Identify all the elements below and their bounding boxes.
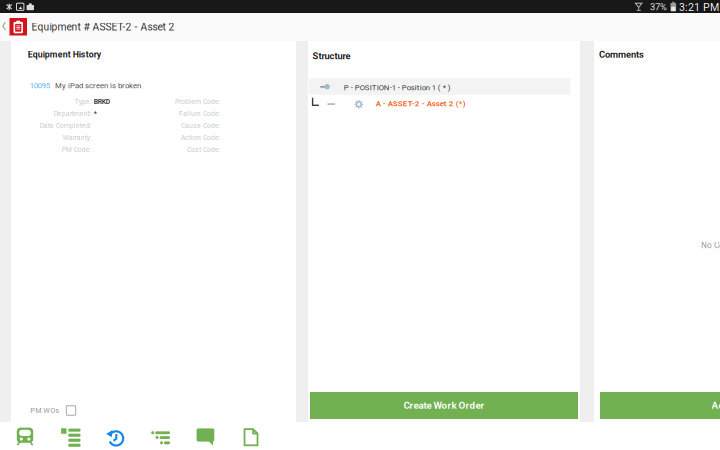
staticText: Warranty: (63, 134, 92, 142)
staticText: Cause Code: (181, 122, 221, 130)
staticText: 3:21 PM (679, 1, 719, 14)
button[interactable]: History (106, 429, 124, 447)
staticText: A - ASSET-2 - Asset 2 (*) (376, 99, 466, 108)
staticText: Add Comment (711, 400, 720, 411)
staticText: Equipment # ASSET-2 - Asset 2 (31, 21, 174, 33)
staticText: 10095 (30, 81, 50, 90)
staticText: Cost Code: (187, 146, 221, 154)
staticText: Department: (54, 110, 92, 118)
button[interactable]: A - ASSET-2 - Asset 2 (*) (309, 96, 571, 110)
button[interactable]: Add Comment (600, 392, 720, 419)
staticText: 37% (650, 2, 667, 12)
button[interactable]: PM WOs (30, 405, 88, 415)
staticText: Date Completed: (40, 122, 92, 130)
button[interactable]: Work Orders (61, 428, 80, 447)
staticText: Equipment History (28, 49, 101, 60)
staticText: P - POSITION-1 - Position 1 ( * ) (344, 83, 451, 92)
button[interactable]: Comments (197, 428, 214, 446)
staticText: * (94, 110, 97, 118)
staticText: Problem Code: (175, 98, 221, 106)
staticText: Structure (313, 50, 351, 61)
staticText: My iPad screen is broken (55, 81, 141, 90)
button[interactable]: Documents (244, 428, 258, 446)
staticText: No Comments (701, 240, 720, 250)
staticText: Create Work Order (403, 400, 484, 411)
button[interactable]: Equipment (16, 428, 34, 446)
button[interactable]: Tasks (151, 431, 170, 444)
staticText: Action Code: (181, 134, 221, 142)
staticText: Failure Code: (179, 110, 221, 118)
staticText: Type: (75, 98, 92, 106)
button[interactable]: Create Work Order (310, 392, 578, 419)
button[interactable]: Back (0, 13, 9, 41)
staticText: PM Code: (62, 146, 92, 154)
staticText: Comments (599, 49, 644, 60)
button[interactable]: P - POSITION-1 - Position 1 ( * ) (309, 78, 570, 95)
staticText: BRKD (94, 98, 110, 106)
staticText: PM WOs (30, 406, 59, 415)
button[interactable]: 10095 (30, 81, 165, 91)
button[interactable]: Equipment (9, 18, 27, 35)
